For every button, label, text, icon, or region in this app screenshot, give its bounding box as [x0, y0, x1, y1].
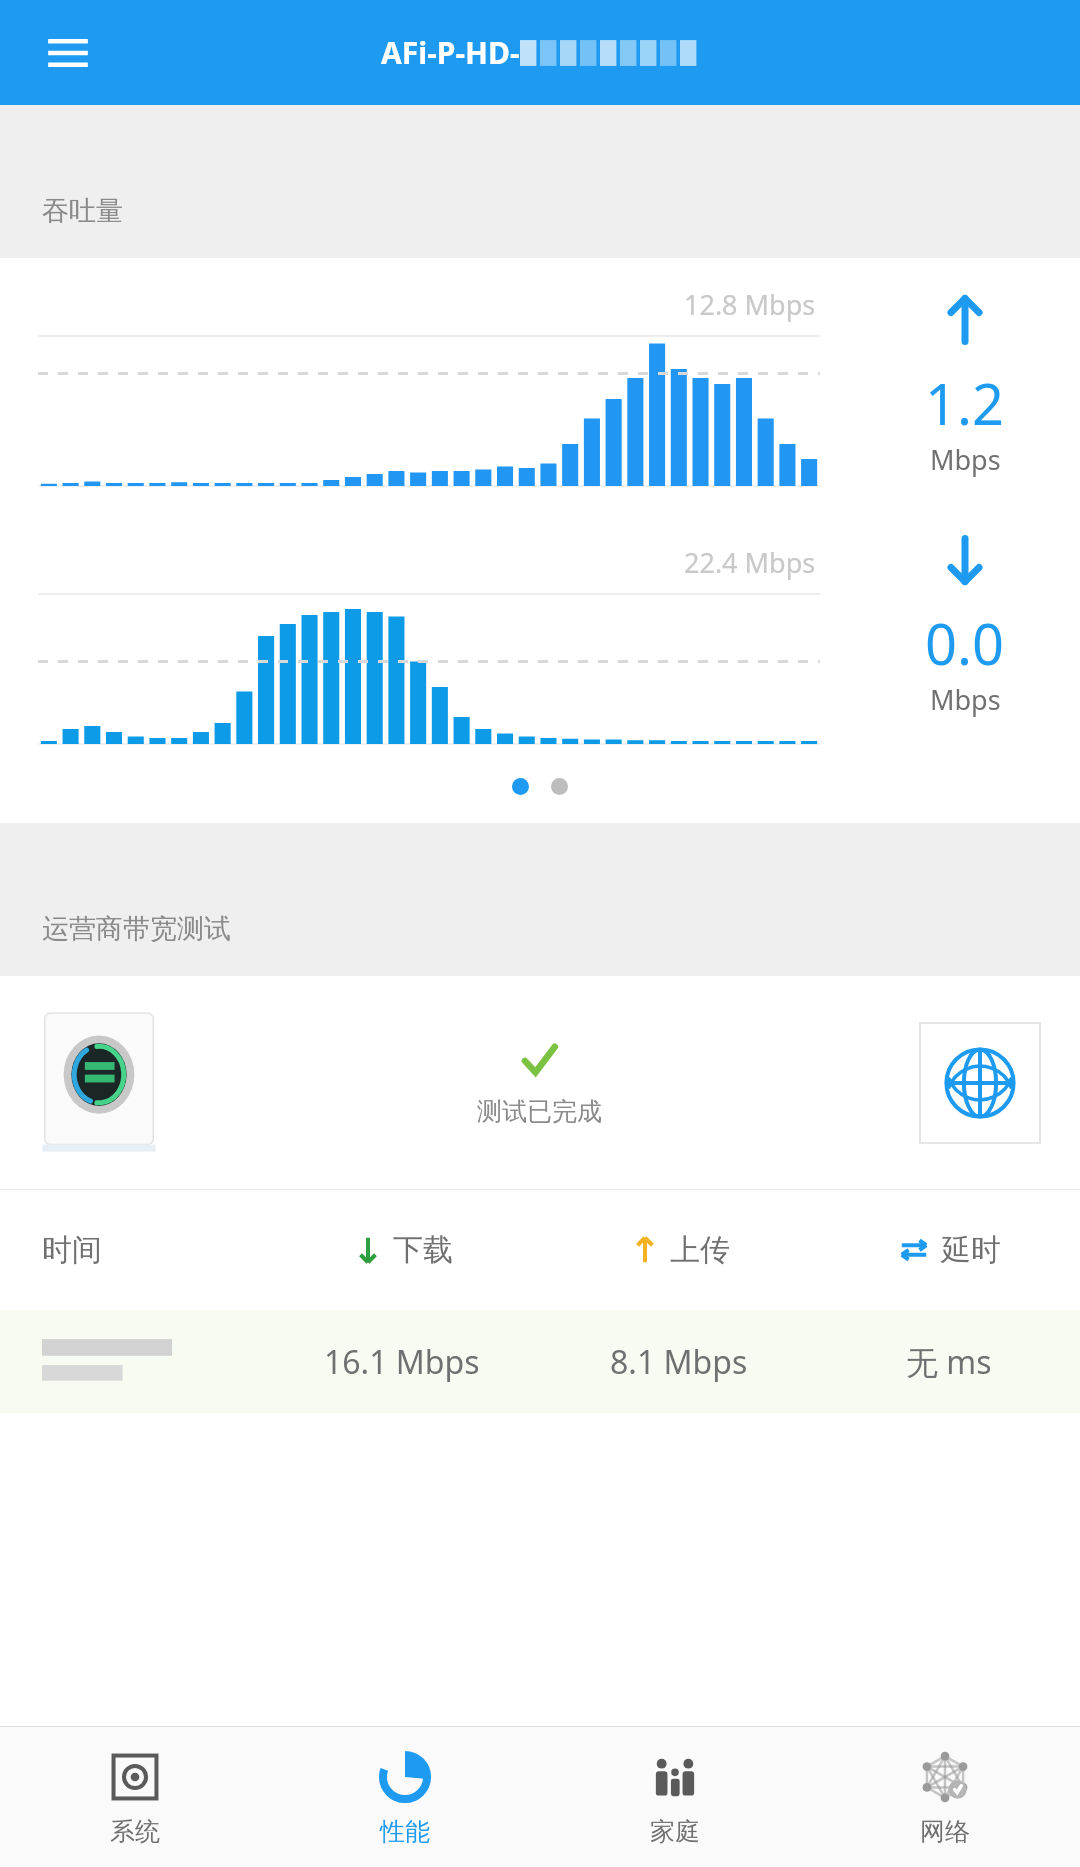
staticText: 家庭 — [650, 1816, 700, 1847]
button[interactable] — [551, 778, 568, 795]
staticText: Mbps — [930, 681, 1001, 718]
button[interactable]: 家庭 — [540, 1727, 810, 1867]
staticText: 性能 — [380, 1816, 430, 1847]
staticText: 运营商带宽测试 — [42, 912, 231, 946]
staticText: 12.8 Mbps — [684, 286, 816, 323]
staticText: Mbps — [930, 441, 1001, 478]
staticText: 网络 — [920, 1816, 970, 1847]
button[interactable]: 系统 — [0, 1727, 270, 1867]
staticText: 系统 — [110, 1816, 160, 1847]
button[interactable]: 性能 — [270, 1727, 540, 1867]
staticText: 8.1 Mbps — [610, 1340, 748, 1384]
staticText: 0.0 — [925, 605, 1005, 681]
staticText: 无 ms — [906, 1340, 992, 1384]
button[interactable]: Menu — [36, 21, 100, 85]
staticText: 16.1 Mbps — [324, 1340, 480, 1384]
staticText: 延时 — [941, 1231, 1001, 1269]
staticText: AFi-P-HD- — [381, 32, 520, 73]
staticText: 测试已完成 — [477, 1096, 602, 1127]
staticText: 下载 — [393, 1231, 453, 1269]
button[interactable]: 网络 — [810, 1727, 1080, 1867]
button[interactable] — [40, 1013, 158, 1153]
staticText: 22.4 Mbps — [684, 544, 816, 581]
button[interactable]: Internet — [920, 1023, 1040, 1143]
button[interactable]: 16.1 Mbps — [0, 1310, 1080, 1413]
staticText: 1.2 — [925, 365, 1005, 441]
staticText: 上传 — [670, 1231, 730, 1269]
staticText: 时间 — [42, 1231, 102, 1269]
staticText: 吞吐量 — [42, 194, 123, 228]
button[interactable] — [512, 778, 529, 795]
